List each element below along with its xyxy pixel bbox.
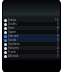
button[interactable]: Social bbox=[3, 38, 60, 42]
staticText: 1 bbox=[57, 30, 59, 34]
button[interactable]: Forums bbox=[3, 46, 60, 50]
button[interactable]: Starred bbox=[3, 34, 60, 38]
staticText: Drafts bbox=[8, 22, 17, 26]
button[interactable]: Spam bbox=[3, 30, 60, 34]
button[interactable]: Updates bbox=[3, 42, 60, 46]
button[interactable]: Inbox bbox=[3, 18, 60, 22]
staticText: 8 bbox=[57, 26, 59, 30]
button[interactable]: Trash bbox=[3, 50, 60, 54]
staticText: 3 bbox=[57, 22, 59, 26]
staticText: Starred bbox=[8, 34, 19, 38]
staticText: Spam bbox=[8, 30, 16, 34]
staticText: 6 bbox=[57, 50, 59, 54]
staticText: Forums bbox=[8, 46, 19, 50]
staticText: All mail bbox=[8, 54, 19, 58]
staticText: Sent bbox=[8, 26, 15, 30]
staticText: 2 bbox=[57, 42, 59, 46]
staticText: Social bbox=[8, 38, 17, 42]
staticText: 7 bbox=[57, 54, 59, 58]
staticText: Updates bbox=[8, 42, 20, 46]
button[interactable]: Sent bbox=[3, 26, 60, 30]
staticText: Inbox bbox=[8, 18, 17, 22]
staticText: 5 bbox=[57, 38, 59, 42]
button[interactable]: All mail bbox=[3, 54, 60, 58]
staticText: 12 bbox=[55, 18, 59, 22]
staticText: Trash bbox=[8, 50, 16, 54]
button[interactable]: Drafts bbox=[3, 22, 60, 26]
staticText: 9 bbox=[57, 34, 59, 38]
staticText: 4 bbox=[57, 46, 59, 50]
